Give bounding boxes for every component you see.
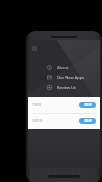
staticText: About <box>57 65 69 70</box>
button[interactable]: Our New Apps <box>28 72 100 82</box>
button[interactable]: About <box>28 62 100 72</box>
staticText: Our New Apps <box>57 75 85 80</box>
staticText: TIMER <box>32 103 79 107</box>
staticText: STATUS <box>32 119 79 123</box>
button[interactable]: Menu <box>31 45 37 51</box>
staticText: VIEW <box>84 119 92 123</box>
button[interactable]: VIEW <box>79 102 96 108</box>
staticText: Review Us <box>57 85 76 90</box>
staticText: VIEW <box>84 103 92 107</box>
button[interactable]: Review Us <box>28 82 100 92</box>
button[interactable]: VIEW <box>79 118 96 124</box>
